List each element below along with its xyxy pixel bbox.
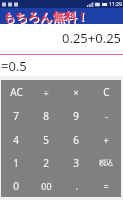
staticText: 00: [41, 180, 52, 192]
staticText: 7: [13, 109, 19, 123]
staticText: 1: [13, 156, 19, 170]
button[interactable]: AC: [1, 80, 31, 104]
staticText: 3: [73, 156, 79, 170]
button[interactable]: 6: [61, 128, 91, 151]
button[interactable]: 4: [1, 128, 31, 151]
button[interactable]: 0: [1, 174, 31, 197]
staticText: もちろん無料！: [3, 9, 89, 24]
staticText: 5: [43, 133, 49, 147]
staticText: =: [103, 180, 109, 192]
button[interactable]: 税込: [91, 151, 121, 174]
staticText: 4: [13, 133, 19, 147]
button[interactable]: 00: [31, 174, 61, 197]
staticText: +: [103, 134, 109, 146]
button[interactable]: Divide: [31, 80, 61, 104]
button[interactable]: Multiply: [61, 80, 91, 104]
staticText: -: [105, 110, 108, 122]
staticText: C: [103, 85, 110, 99]
button[interactable]: 8: [31, 104, 61, 128]
staticText: .: [75, 179, 78, 193]
staticText: AC: [10, 85, 23, 99]
staticText: 8: [43, 109, 49, 123]
button[interactable]: もちろん無料！: [0, 8, 123, 24]
button[interactable]: Decimal point: [61, 174, 91, 197]
button[interactable]: 9: [61, 104, 91, 128]
staticText: ÷: [43, 86, 49, 98]
staticText: 0: [13, 179, 19, 193]
staticText: 2: [43, 156, 49, 170]
staticText: ×: [73, 86, 79, 98]
button[interactable]: 3: [61, 151, 91, 174]
button[interactable]: Equals: [91, 174, 121, 197]
button[interactable]: 2: [31, 151, 61, 174]
button[interactable]: 5: [31, 128, 61, 151]
staticText: 6: [73, 133, 79, 147]
staticText: 0.25+0.25: [62, 29, 122, 47]
button[interactable]: 7: [1, 104, 31, 128]
staticText: 税込: [99, 158, 113, 167]
staticText: 9: [73, 109, 79, 123]
staticText: 11:29: [109, 1, 122, 8]
staticText: もちろん無料！: [4, 10, 90, 25]
button[interactable]: Minus: [91, 104, 121, 128]
button[interactable]: C: [91, 80, 121, 104]
staticText: =0.5: [1, 57, 27, 75]
button[interactable]: Plus: [91, 128, 121, 151]
button[interactable]: 1: [1, 151, 31, 174]
